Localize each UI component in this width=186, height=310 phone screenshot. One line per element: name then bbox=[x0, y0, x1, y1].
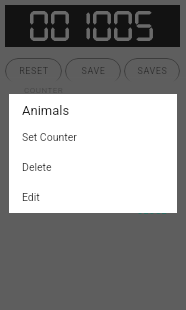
staticText: Animals bbox=[22, 103, 70, 118]
button[interactable]: Delete bbox=[9, 152, 177, 182]
staticText: SAVES bbox=[137, 66, 168, 77]
staticText: Delete bbox=[22, 161, 52, 173]
staticText: SAVE bbox=[81, 66, 106, 77]
staticText: Set Counter bbox=[22, 131, 77, 143]
button[interactable]: CLOSE bbox=[137, 206, 168, 217]
button[interactable]: Edit bbox=[9, 182, 177, 212]
button[interactable]: SAVES bbox=[124, 58, 180, 84]
button[interactable]: RESET bbox=[5, 58, 62, 84]
staticText: Edit bbox=[22, 191, 40, 203]
staticText: CLOSE bbox=[137, 206, 168, 217]
button[interactable]: SAVE bbox=[65, 58, 121, 84]
staticText: COUNTER bbox=[24, 86, 64, 95]
staticText: RESET bbox=[19, 66, 49, 77]
button[interactable]: Set Counter bbox=[9, 122, 177, 152]
